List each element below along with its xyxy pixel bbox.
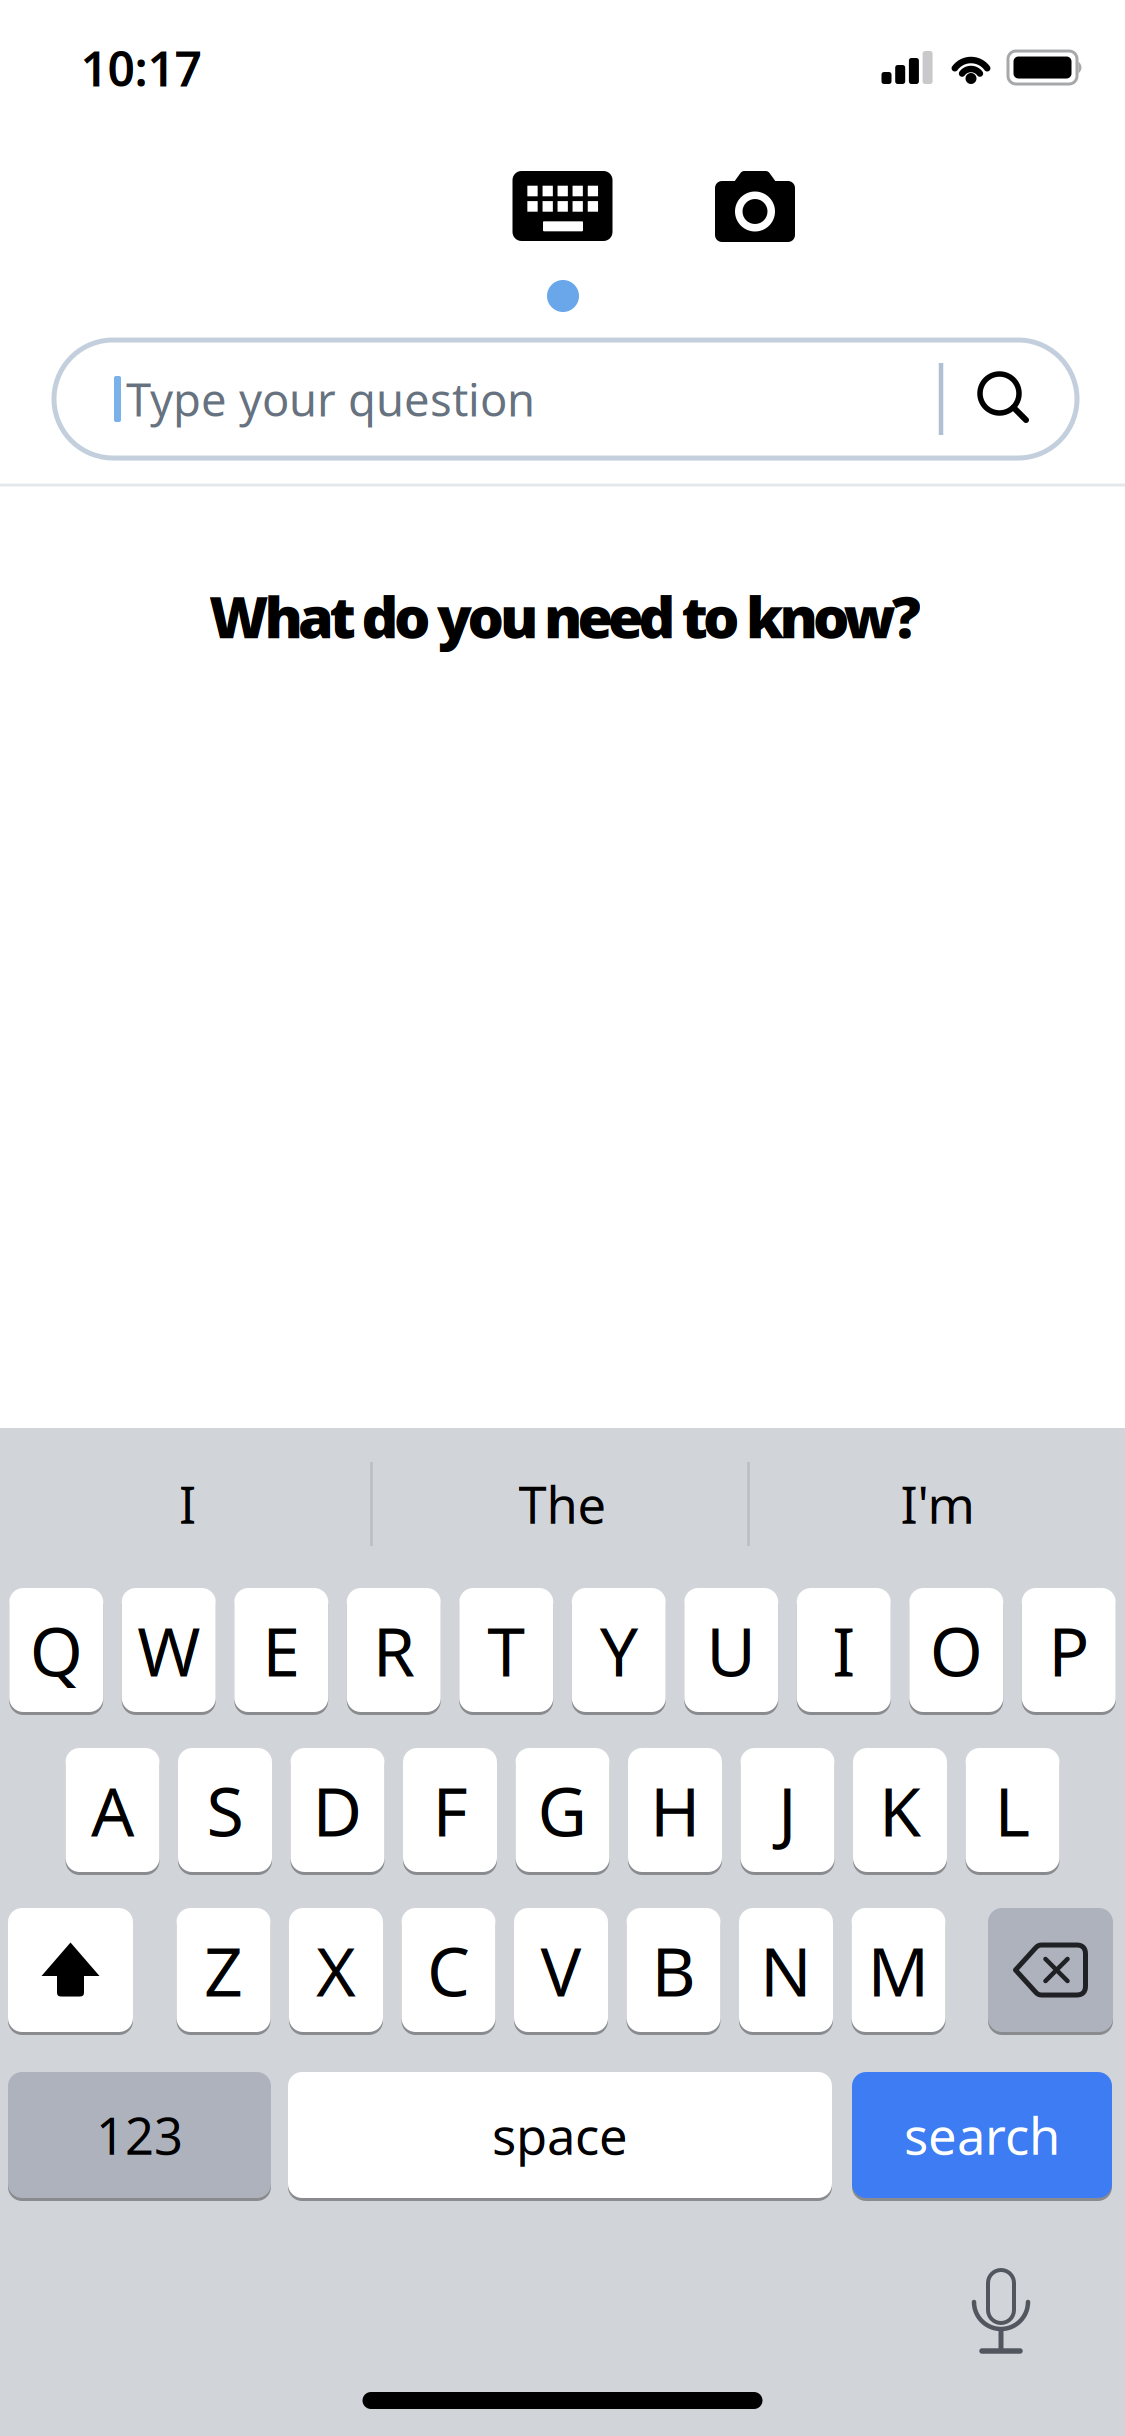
staticText: 123 bbox=[96, 2101, 183, 2169]
button[interactable]: Camera bbox=[695, 156, 815, 256]
button[interactable]: D bbox=[290, 1746, 384, 1873]
staticText: N bbox=[760, 1925, 812, 2015]
staticText: Q bbox=[30, 1605, 83, 1695]
button[interactable]: A bbox=[65, 1746, 159, 1873]
button[interactable]: Dictate bbox=[974, 2270, 1028, 2356]
staticText: E bbox=[262, 1605, 300, 1695]
staticText: O bbox=[930, 1605, 983, 1695]
button[interactable]: W bbox=[122, 1586, 216, 1713]
button[interactable]: Q bbox=[9, 1586, 103, 1713]
staticText: R bbox=[373, 1605, 415, 1695]
staticText: L bbox=[994, 1765, 1030, 1855]
staticText: P bbox=[1048, 1605, 1089, 1695]
staticText: H bbox=[650, 1765, 700, 1855]
staticText: X bbox=[316, 1925, 356, 2015]
staticText: F bbox=[432, 1765, 467, 1855]
button[interactable]: M bbox=[851, 1906, 945, 2033]
staticText: D bbox=[312, 1765, 362, 1855]
staticText: I bbox=[832, 1605, 855, 1695]
button[interactable]: T bbox=[459, 1586, 553, 1713]
staticText: T bbox=[487, 1605, 525, 1695]
staticText: What do you need to know? bbox=[209, 578, 921, 654]
staticText: U bbox=[706, 1605, 756, 1695]
button[interactable]: space bbox=[288, 2070, 832, 2199]
staticText: I'm bbox=[900, 1470, 974, 1538]
button[interactable]: I'm bbox=[752, 1444, 1122, 1564]
button[interactable]: V bbox=[514, 1906, 608, 2033]
button[interactable]: search bbox=[852, 2070, 1112, 2199]
button[interactable]: Type your question bbox=[54, 340, 1077, 458]
button[interactable]: The bbox=[377, 1444, 747, 1564]
button[interactable]: C bbox=[401, 1906, 495, 2033]
button[interactable]: P bbox=[1022, 1586, 1116, 1713]
staticText: M bbox=[867, 1925, 929, 2015]
button[interactable]: I bbox=[2, 1444, 372, 1564]
staticText: K bbox=[879, 1765, 921, 1855]
staticText: J bbox=[778, 1765, 797, 1855]
staticText: G bbox=[537, 1765, 587, 1855]
staticText: search bbox=[904, 2101, 1060, 2169]
button[interactable]: E bbox=[234, 1586, 328, 1713]
button[interactable]: Shift bbox=[8, 1906, 133, 2033]
button[interactable]: Keyboard bbox=[497, 156, 627, 256]
button[interactable]: L bbox=[965, 1746, 1059, 1873]
staticText: V bbox=[540, 1925, 581, 2015]
staticText: W bbox=[137, 1605, 200, 1695]
staticText: space bbox=[492, 2101, 628, 2169]
staticText: B bbox=[651, 1925, 695, 2015]
staticText: Z bbox=[204, 1925, 243, 2015]
staticText: 10:17 bbox=[80, 36, 201, 100]
staticText: A bbox=[91, 1765, 134, 1855]
button[interactable]: Z bbox=[176, 1906, 270, 2033]
button[interactable]: U bbox=[684, 1586, 778, 1713]
staticText: C bbox=[427, 1925, 470, 2015]
button[interactable]: Y bbox=[572, 1586, 666, 1713]
button[interactable]: N bbox=[739, 1906, 833, 2033]
staticText: S bbox=[206, 1765, 243, 1855]
button[interactable]: R bbox=[347, 1586, 441, 1713]
button[interactable]: O bbox=[909, 1586, 1003, 1713]
button[interactable]: B bbox=[626, 1906, 720, 2033]
button[interactable]: I bbox=[797, 1586, 891, 1713]
button[interactable]: S bbox=[178, 1746, 272, 1873]
staticText: I bbox=[179, 1470, 196, 1538]
button[interactable]: Delete bbox=[988, 1906, 1113, 2033]
button[interactable]: G bbox=[515, 1746, 609, 1873]
staticText: The bbox=[518, 1470, 606, 1538]
button[interactable]: J bbox=[740, 1746, 834, 1873]
button[interactable]: K bbox=[853, 1746, 947, 1873]
button[interactable]: F bbox=[403, 1746, 497, 1873]
staticText: Type your question bbox=[126, 369, 535, 429]
button[interactable]: X bbox=[289, 1906, 383, 2033]
button[interactable]: 123 bbox=[8, 2070, 271, 2199]
button[interactable]: H bbox=[628, 1746, 722, 1873]
staticText: Y bbox=[600, 1605, 638, 1695]
